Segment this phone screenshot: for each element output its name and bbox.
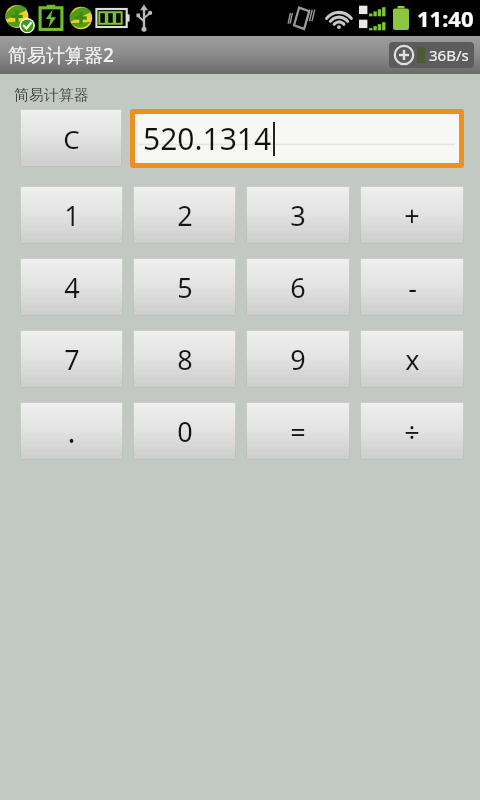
button[interactable]: 3 bbox=[246, 186, 350, 244]
button[interactable]: 1 bbox=[20, 186, 123, 244]
staticText: 0 bbox=[177, 413, 193, 450]
staticText: 36B/s bbox=[429, 45, 469, 65]
staticText: 11:40 bbox=[417, 3, 474, 33]
staticText: 1 bbox=[64, 197, 80, 234]
button[interactable]: ÷ bbox=[360, 402, 464, 460]
button[interactable]: 5 bbox=[133, 258, 236, 316]
staticText: 7 bbox=[64, 341, 80, 378]
staticText: 简易计算器 bbox=[14, 86, 89, 105]
button[interactable]: Network speed bbox=[389, 42, 474, 68]
staticText: 5 bbox=[177, 269, 193, 306]
staticText: + bbox=[404, 197, 420, 234]
button[interactable]: 2 bbox=[133, 186, 236, 244]
button[interactable]: + bbox=[360, 186, 464, 244]
button[interactable]: 6 bbox=[246, 258, 350, 316]
staticText: 520.1314 bbox=[143, 118, 272, 159]
button[interactable]: 8 bbox=[133, 330, 236, 388]
button[interactable]: C bbox=[20, 109, 122, 167]
button[interactable]: - bbox=[360, 258, 464, 316]
staticText: 2 bbox=[177, 197, 193, 234]
other: Network speed bbox=[394, 45, 414, 65]
button[interactable]: 4 bbox=[20, 258, 123, 316]
staticText: 3 bbox=[290, 197, 306, 234]
staticText: 简易计算器2 bbox=[8, 42, 114, 68]
staticText: 9 bbox=[290, 341, 306, 378]
button[interactable]: x bbox=[360, 330, 464, 388]
staticText: = bbox=[290, 413, 306, 450]
staticText: 8 bbox=[177, 341, 193, 378]
staticText: 6 bbox=[290, 269, 306, 306]
button[interactable]: 0 bbox=[133, 402, 236, 460]
staticText: x bbox=[405, 341, 420, 378]
staticText: 4 bbox=[64, 269, 80, 306]
button[interactable]: 9 bbox=[246, 330, 350, 388]
staticText: . bbox=[67, 411, 76, 452]
staticText: ÷ bbox=[404, 413, 420, 450]
button[interactable]: 520.1314 bbox=[135, 114, 459, 163]
button[interactable]: 7 bbox=[20, 330, 123, 388]
button[interactable]: = bbox=[246, 402, 350, 460]
staticText: C bbox=[63, 121, 80, 156]
staticText: - bbox=[408, 269, 417, 306]
button[interactable]: . bbox=[20, 402, 123, 460]
